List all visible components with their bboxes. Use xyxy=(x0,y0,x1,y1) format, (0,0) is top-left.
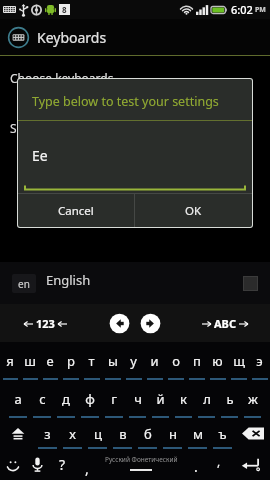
button[interactable]: ы xyxy=(102,342,123,380)
button[interactable]: Previous xyxy=(109,313,130,334)
button[interactable]: Emoji xyxy=(0,449,25,480)
staticText: ш xyxy=(24,352,36,370)
button[interactable]: en xyxy=(0,262,270,304)
staticText: р xyxy=(67,352,75,370)
button[interactable]: й xyxy=(149,380,172,418)
staticText: ъ xyxy=(218,425,227,443)
staticText: Settings xyxy=(10,120,56,136)
button[interactable]: к xyxy=(172,380,195,418)
staticText: о xyxy=(172,352,180,370)
button[interactable]: ф xyxy=(78,380,102,418)
staticText: с xyxy=(39,390,46,408)
button[interactable]: ж xyxy=(241,380,264,418)
button[interactable]: ю xyxy=(207,342,228,380)
button[interactable]: Enter xyxy=(230,449,270,480)
button[interactable]: х xyxy=(60,418,85,449)
button[interactable]: . xyxy=(184,449,207,480)
button[interactable]: м xyxy=(185,418,210,449)
staticText: н xyxy=(169,425,177,443)
staticText: ю xyxy=(212,352,223,370)
staticText: е xyxy=(46,352,54,370)
staticText: PM xyxy=(255,5,266,15)
button[interactable]: е xyxy=(40,342,60,380)
staticText: ABC xyxy=(214,316,236,331)
button[interactable]: ш xyxy=(20,342,40,380)
button[interactable]: ъ xyxy=(210,418,235,449)
button[interactable]: л xyxy=(195,380,218,418)
button[interactable]: э xyxy=(249,342,270,380)
staticText: English xyxy=(46,271,91,289)
button[interactable]: Русский Фонетический xyxy=(98,449,184,480)
staticText: en xyxy=(18,277,30,291)
staticText: к xyxy=(180,390,187,408)
staticText: г xyxy=(111,390,117,408)
staticText: 8 xyxy=(62,4,67,15)
staticText: 6:02 xyxy=(231,2,253,17)
staticText: ы xyxy=(108,352,118,370)
button[interactable]: т xyxy=(81,342,102,380)
button[interactable]: в xyxy=(110,418,135,449)
staticText: щ xyxy=(233,352,245,370)
staticText: з xyxy=(44,425,51,443)
button[interactable]: Ee xyxy=(18,121,252,193)
staticText: Русский Фонетический xyxy=(105,455,178,464)
button[interactable]: Shift xyxy=(0,418,35,449)
button[interactable]: Voice input xyxy=(25,449,50,480)
button[interactable]: д xyxy=(54,380,78,418)
button[interactable]: , xyxy=(207,449,230,480)
staticText: Ee xyxy=(32,146,48,165)
button[interactable]: , xyxy=(75,449,98,480)
staticText: ж xyxy=(248,390,258,408)
staticText: ф xyxy=(85,390,95,408)
button[interactable]: п xyxy=(186,342,207,380)
staticText: б xyxy=(144,425,152,443)
button[interactable]: з xyxy=(35,418,60,449)
staticText: , xyxy=(85,459,89,478)
button[interactable]: ь xyxy=(218,380,241,418)
button[interactable]: ц xyxy=(85,418,110,449)
staticText: Cancel xyxy=(58,203,94,219)
button[interactable]: Cancel xyxy=(18,194,134,227)
staticText: ь xyxy=(226,390,234,408)
other: App icon xyxy=(8,27,29,48)
button[interactable]: я xyxy=(0,342,20,380)
staticText: Choose keyboards xyxy=(10,70,114,86)
staticText: й xyxy=(156,390,165,408)
button[interactable]: г xyxy=(102,380,126,418)
staticText: я xyxy=(6,352,14,370)
staticText: т xyxy=(88,352,95,370)
button[interactable]: Delete xyxy=(235,418,270,449)
staticText: ц xyxy=(94,425,102,443)
staticText: д xyxy=(62,390,70,408)
button[interactable]: щ xyxy=(228,342,249,380)
button[interactable]: Next xyxy=(140,313,161,334)
button[interactable]: с xyxy=(30,380,54,418)
button[interactable]: ч xyxy=(126,380,149,418)
button[interactable]: н xyxy=(160,418,185,449)
button[interactable]: и xyxy=(144,342,165,380)
staticText: ч xyxy=(134,390,142,408)
staticText: Keyboards xyxy=(37,28,107,47)
staticText: OK xyxy=(185,203,202,219)
button[interactable]: о xyxy=(165,342,186,380)
staticText: п xyxy=(193,352,201,370)
staticText: Type below to test your settings xyxy=(32,93,219,110)
staticText: . xyxy=(194,457,198,476)
staticText: ? xyxy=(59,455,66,474)
button[interactable]: ABC xyxy=(180,304,270,342)
staticText: у xyxy=(130,352,137,370)
staticText: в xyxy=(119,425,127,443)
button[interactable]: OK xyxy=(135,194,252,227)
button[interactable]: р xyxy=(60,342,81,380)
staticText: м xyxy=(193,425,203,443)
staticText: 123 xyxy=(36,316,55,331)
button[interactable]: у xyxy=(123,342,144,380)
button[interactable]: б xyxy=(135,418,160,449)
button[interactable]: ? xyxy=(50,449,75,480)
button[interactable]: 123 xyxy=(0,304,90,342)
staticText: э xyxy=(256,352,263,370)
staticText: л xyxy=(203,390,211,408)
button[interactable]: а xyxy=(6,380,30,418)
button[interactable]: App icon xyxy=(0,19,270,55)
